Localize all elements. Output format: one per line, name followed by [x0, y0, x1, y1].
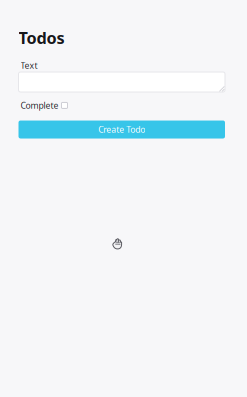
staticText: Text: [20, 59, 37, 71]
button[interactable]: Create Todo: [18, 120, 225, 138]
staticText: Todos: [18, 26, 64, 49]
button[interactable]: Complete: [20, 99, 67, 111]
staticText: Create Todo: [98, 124, 145, 135]
staticText: Complete: [20, 99, 58, 111]
